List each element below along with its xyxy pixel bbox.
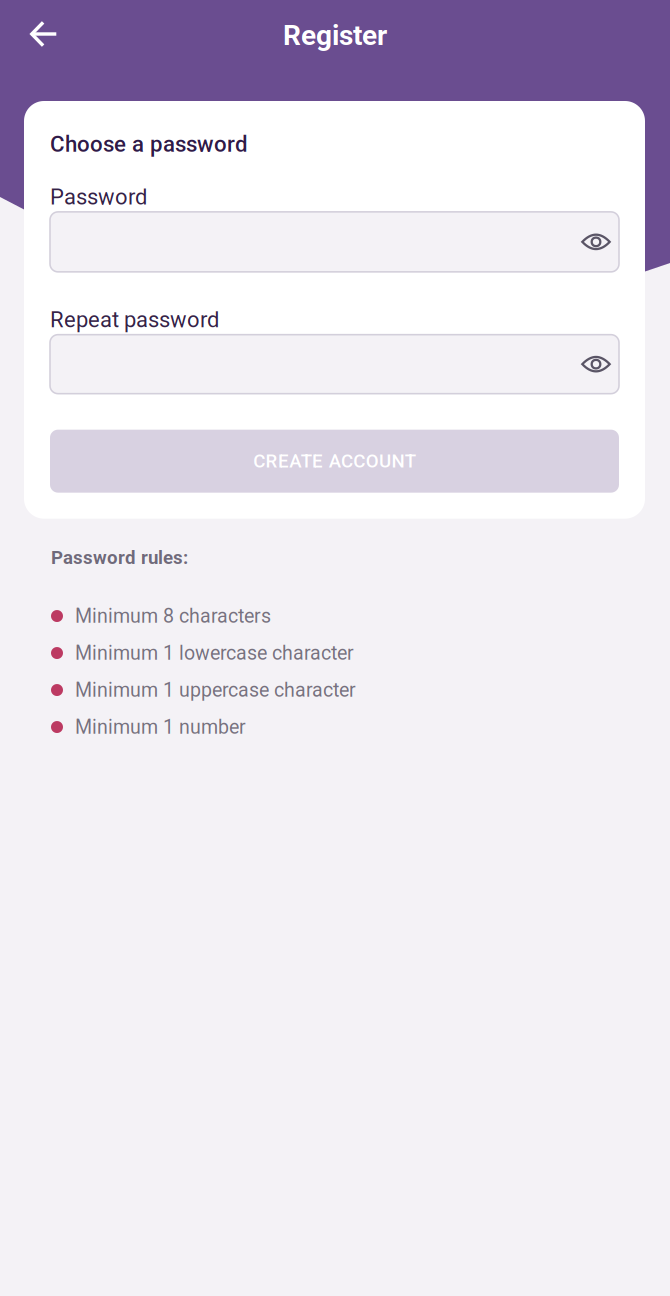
staticText: Register — [283, 19, 387, 52]
button[interactable]: Show password — [567, 342, 611, 386]
staticText: Minimum 1 uppercase character — [75, 678, 356, 701]
button[interactable]: CREATE ACCOUNT — [50, 430, 619, 493]
staticText: CREATE ACCOUNT — [253, 450, 416, 472]
staticText: Password rules: — [51, 547, 188, 569]
staticText: Choose a password — [50, 131, 248, 157]
button[interactable]: Back — [0, 0, 74, 67]
staticText: Minimum 1 lowercase character — [75, 641, 354, 664]
button[interactable]: Show password — [567, 220, 611, 264]
staticText: Minimum 1 number — [75, 715, 246, 738]
staticText: Repeat password — [50, 307, 219, 333]
staticText: Minimum 8 characters — [75, 604, 271, 627]
staticText: Password — [50, 184, 147, 210]
